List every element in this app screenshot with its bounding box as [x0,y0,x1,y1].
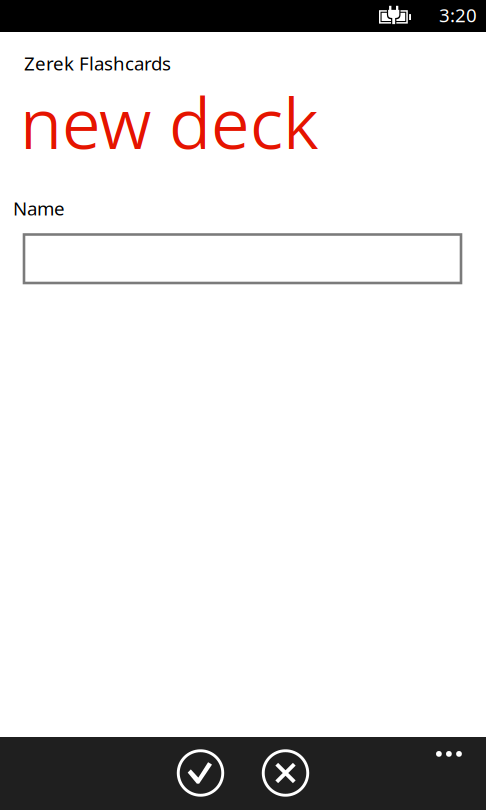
button[interactable]: Cancel [254,742,316,804]
button[interactable]: Name [24,234,461,283]
button[interactable]: Accept [169,742,231,804]
staticText: Zerek Flashcards [24,50,171,76]
button[interactable]: More options [420,737,478,771]
staticText: 3:20 [439,2,477,28]
staticText: new deck [20,75,318,169]
staticText: Name [13,195,65,221]
